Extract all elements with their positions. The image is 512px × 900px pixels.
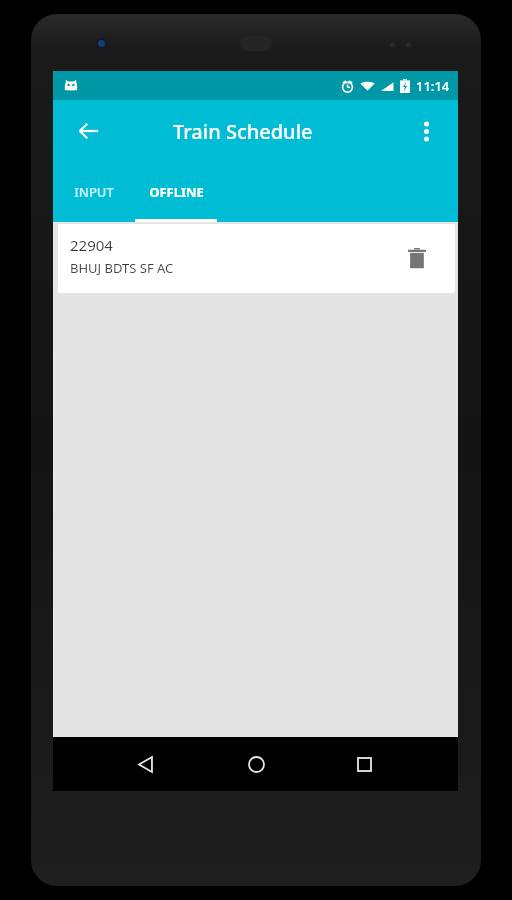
button[interactable]: 22904 <box>58 224 455 293</box>
button[interactable]: OFFLINE <box>135 162 217 222</box>
button[interactable]: INPUT <box>53 162 135 222</box>
button[interactable]: More options <box>404 109 448 153</box>
button[interactable]: Recent apps <box>342 742 386 786</box>
button[interactable]: Back <box>123 742 167 786</box>
staticText: INPUT <box>74 183 114 201</box>
button[interactable]: Home <box>234 742 278 786</box>
staticText: 22904 <box>70 235 113 255</box>
staticText: OFFLINE <box>149 183 204 201</box>
staticText: BHUJ BDTS SF AC <box>70 259 174 277</box>
staticText: 11:14 <box>416 77 450 95</box>
button[interactable]: Delete <box>396 238 438 280</box>
button[interactable]: Back <box>67 109 111 153</box>
staticText: Train Schedule <box>173 118 313 145</box>
